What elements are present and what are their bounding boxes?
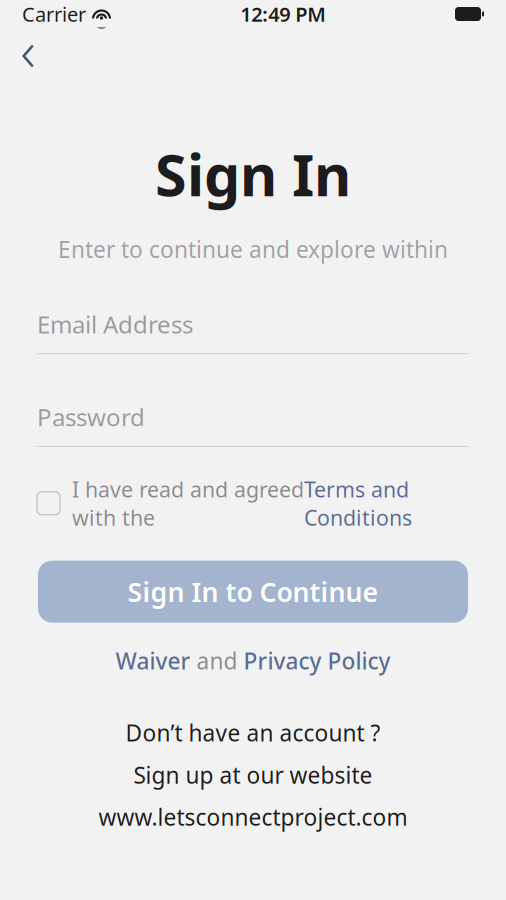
- staticText: Enter to continue and explore within: [58, 234, 448, 264]
- staticText: Terms and Conditions: [304, 475, 412, 532]
- staticText: Sign In to Continue: [127, 574, 378, 609]
- staticText: Sign up at our website: [133, 760, 372, 790]
- staticText: 12:49 PM: [240, 1, 326, 27]
- staticText: Sign In: [155, 136, 351, 212]
- staticText: Email Address: [37, 308, 193, 340]
- staticText: Privacy Policy: [243, 646, 390, 676]
- staticText: Password: [37, 401, 145, 433]
- staticText: I have read and agreed with the: [72, 475, 304, 532]
- staticText: Waiver: [115, 646, 190, 676]
- button[interactable]: Back: [6, 34, 50, 78]
- button[interactable]: Sign In to Continue: [38, 561, 468, 623]
- button[interactable]: I have read and agreed with the: [0, 475, 506, 532]
- button[interactable]: Waiver: [115, 646, 190, 676]
- staticText: Carrier: [22, 1, 86, 27]
- staticText: and: [190, 646, 243, 676]
- button[interactable]: Privacy Policy: [243, 646, 390, 676]
- staticText: Don’t have an account ?: [125, 718, 380, 748]
- staticText: www.letsconnectproject.com: [98, 802, 407, 832]
